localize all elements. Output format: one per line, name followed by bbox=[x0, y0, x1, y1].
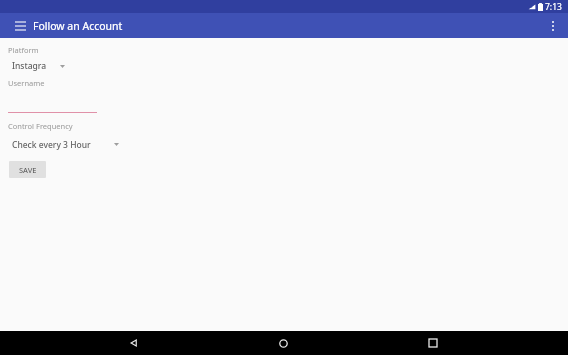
button[interactable]: Check every 3 Hour bbox=[12, 138, 119, 151]
staticText: Platform bbox=[8, 45, 39, 55]
button[interactable] bbox=[8, 101, 97, 113]
button[interactable]: Back bbox=[119, 331, 149, 355]
staticText: Check every 3 Hour bbox=[12, 139, 91, 151]
staticText: 7:13 bbox=[545, 1, 562, 13]
staticText: Follow an Account bbox=[33, 19, 123, 33]
button[interactable]: Recent apps bbox=[418, 331, 448, 355]
staticText: Username bbox=[8, 78, 45, 88]
staticText: Instagram bbox=[12, 60, 54, 73]
button[interactable]: Home bbox=[268, 331, 298, 355]
button[interactable]: More options bbox=[544, 17, 562, 35]
button[interactable]: SAVE bbox=[9, 161, 46, 178]
staticText: SAVE bbox=[19, 165, 37, 175]
button[interactable]: Instagram bbox=[12, 60, 65, 73]
button[interactable]: Open navigation drawer bbox=[12, 18, 28, 34]
staticText: Control Frequency bbox=[8, 121, 73, 131]
